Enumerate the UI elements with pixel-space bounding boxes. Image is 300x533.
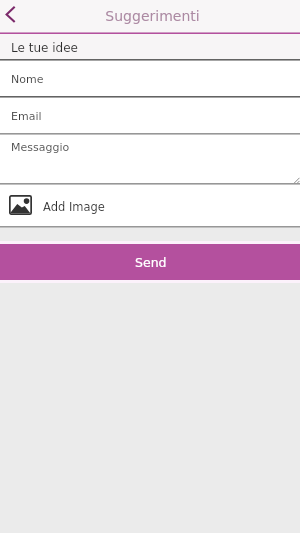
staticText: Suggerimenti [105,8,200,24]
staticText: Messaggio [11,141,70,154]
button[interactable]: Add Image [0,185,300,226]
button[interactable]: Messaggio [0,135,300,183]
button[interactable]: Email [0,98,300,133]
staticText: Add Image [43,200,105,213]
staticText: Le tue idee [11,41,78,55]
staticText: Nome [11,73,44,86]
button[interactable]: Send [0,244,300,280]
button[interactable]: Back [0,0,24,30]
button[interactable]: Nome [0,61,300,96]
staticText: Email [11,110,42,123]
staticText: Send [135,255,167,270]
